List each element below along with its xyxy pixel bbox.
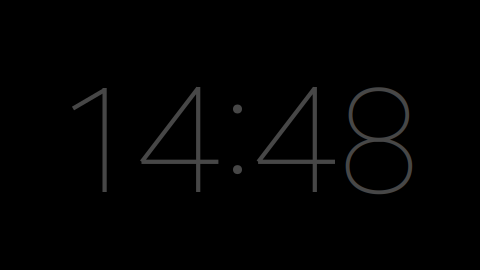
staticText: 8 (338, 57, 418, 229)
button[interactable]: 14:48 (0, 0, 480, 270)
